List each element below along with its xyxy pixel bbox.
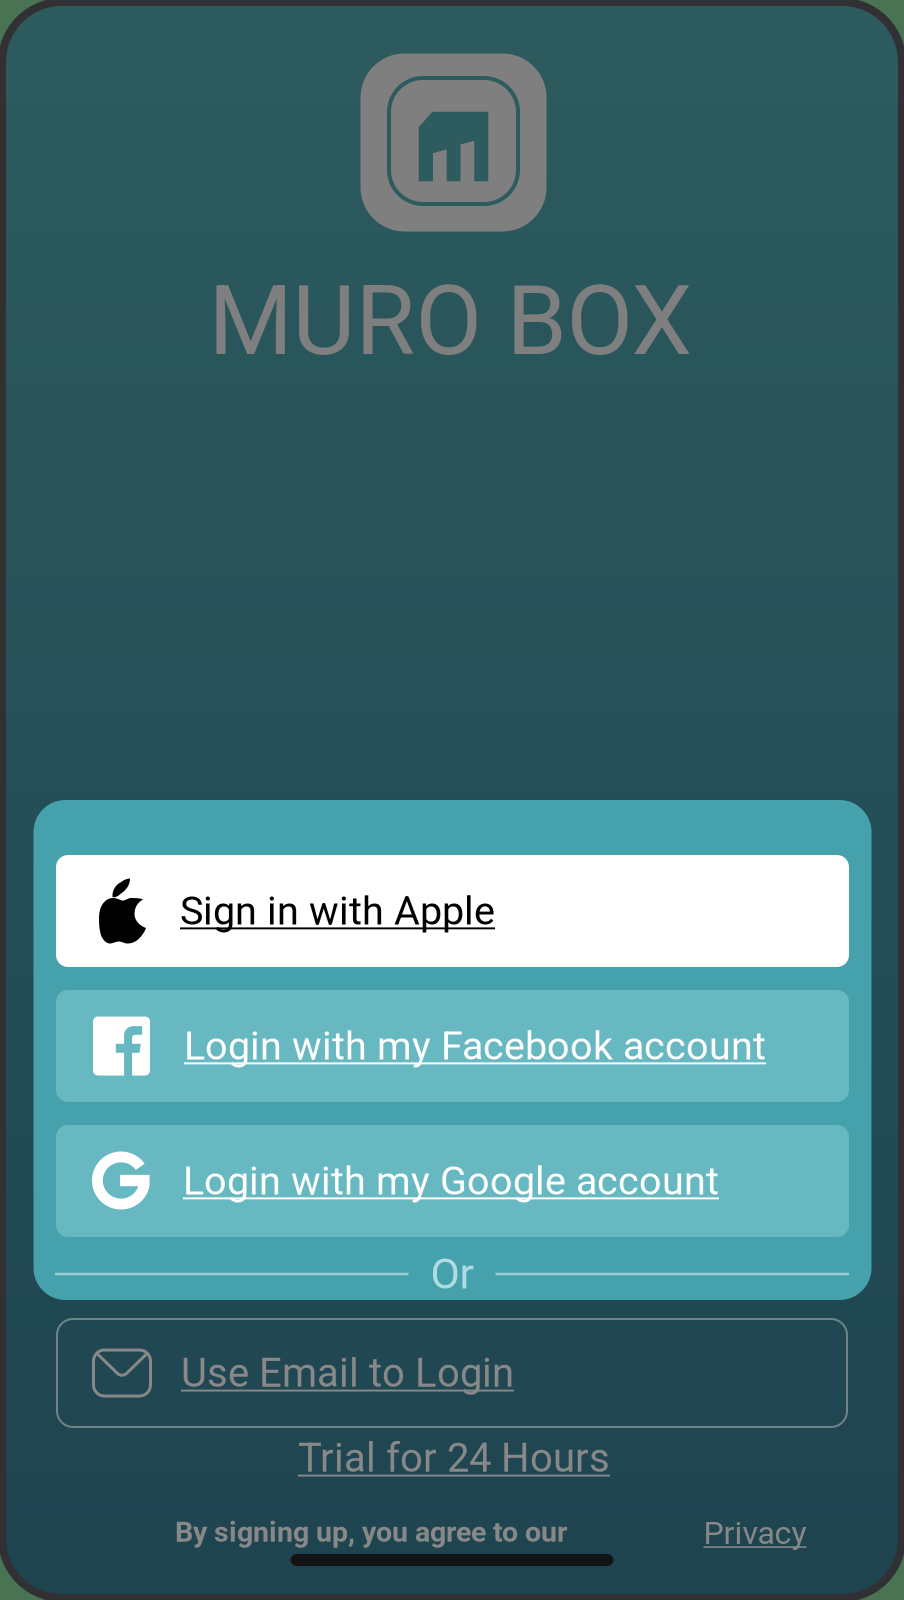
staticText: Privacy	[703, 1514, 806, 1552]
staticText: By signing up, you agree to our	[175, 1515, 567, 1549]
staticText: Sign in with Apple	[180, 888, 495, 934]
button[interactable]: Login with my Facebook account	[56, 990, 849, 1102]
button[interactable]: Use Email to Login	[57, 1319, 847, 1427]
button[interactable]: Login with my Google account	[56, 1125, 849, 1237]
staticText: MURO BOX	[208, 264, 692, 378]
staticText: Trial for 24 Hours	[298, 1435, 610, 1481]
staticText: Login with my Google account	[183, 1158, 719, 1204]
button[interactable]: Sign in with Apple	[56, 855, 849, 967]
staticText: Login with my Facebook account	[184, 1023, 766, 1069]
button[interactable]: Privacy	[703, 1514, 806, 1552]
button[interactable]: Trial for 24 Hours	[298, 1435, 610, 1481]
staticText: Or	[430, 1249, 473, 1299]
staticText: Use Email to Login	[181, 1350, 514, 1396]
